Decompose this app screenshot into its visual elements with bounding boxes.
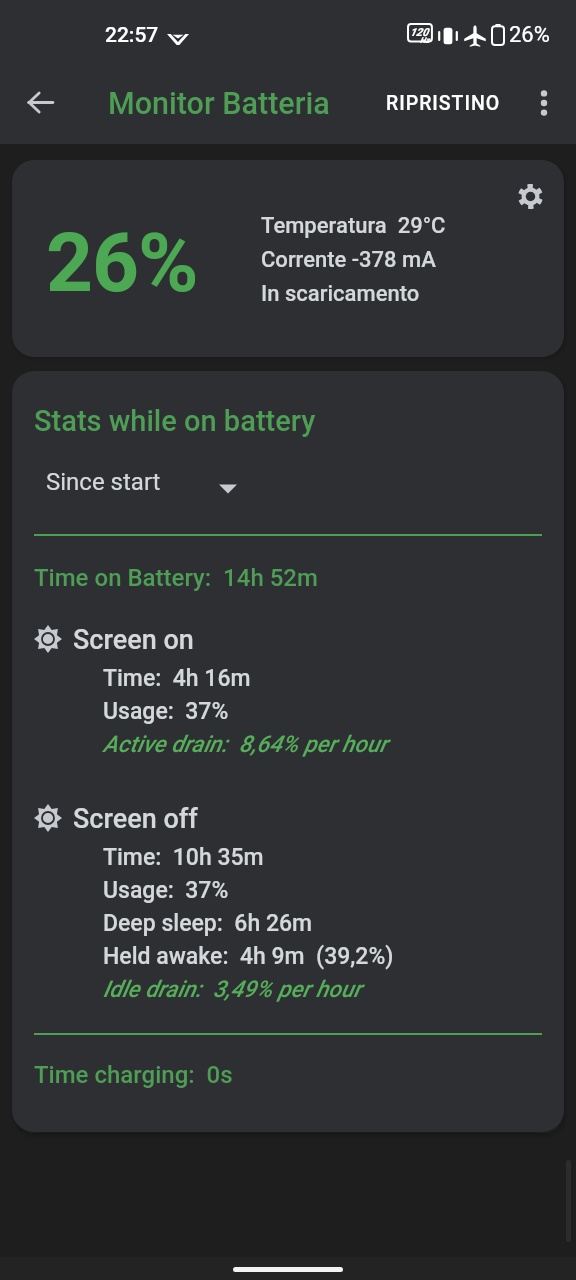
staticText: 22:57 — [105, 23, 159, 48]
staticText: Screen off — [73, 803, 198, 835]
staticText: Monitor Batteria — [108, 86, 330, 122]
staticText: Corrente -378 mA — [261, 247, 436, 273]
button[interactable]: RIPRISTINO — [376, 80, 511, 127]
staticText: Since start — [46, 468, 161, 496]
staticText: Deep sleep: 6h 26m — [103, 910, 313, 937]
staticText: Time charging: 0s — [34, 1061, 233, 1089]
staticText: 26% — [46, 215, 198, 311]
staticText: Idle drain: 3,49% per hour — [103, 976, 362, 1003]
staticText: Temperatura 29°C — [261, 213, 446, 239]
staticText: 120 — [410, 26, 429, 39]
staticText: Usage: 37% — [103, 698, 229, 725]
staticText: Screen on — [73, 624, 194, 656]
staticText: Time on Battery: 14h 52m — [34, 564, 318, 592]
staticText: RIPRISTINO — [386, 92, 501, 115]
staticText: Active drain: 8,64% per hour — [103, 731, 388, 758]
button[interactable]: Settings — [506, 172, 554, 220]
staticText: Time: 10h 35m — [103, 844, 264, 871]
button[interactable]: More options — [519, 78, 569, 128]
staticText: Hz — [420, 36, 430, 45]
button[interactable]: 26% — [12, 160, 564, 357]
button[interactable]: Since start — [34, 457, 274, 507]
staticText: In scaricamento — [261, 281, 420, 307]
staticText: Time: 4h 16m — [103, 665, 251, 692]
staticText: 26% — [509, 22, 550, 48]
button[interactable]: Back — [12, 74, 68, 130]
staticText: Stats while on battery — [34, 404, 316, 438]
staticText: Held awake: 4h 9m (39,2%) — [103, 943, 394, 970]
staticText: Usage: 37% — [103, 877, 229, 904]
